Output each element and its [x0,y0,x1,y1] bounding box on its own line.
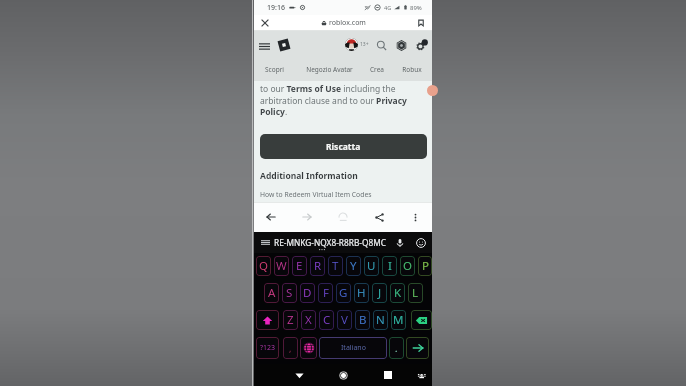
button[interactable]: Q [256,256,271,276]
button[interactable]: D [300,283,315,303]
button[interactable]: Switch keyboard [413,364,429,386]
staticText: 89% [410,4,422,12]
staticText: V [341,312,348,328]
button[interactable]: Share [369,207,389,227]
button[interactable]: H [354,283,369,303]
staticText: C [323,312,331,328]
button[interactable]: Voice input [392,232,408,253]
button[interactable]: Home [335,364,351,386]
button[interactable]: Back [291,364,307,386]
staticText: roblox.com [329,18,366,28]
button[interactable]: Settings [414,38,428,52]
button[interactable]: Italiano [319,337,387,359]
button[interactable]: G [336,283,351,303]
staticText: F [323,285,329,301]
staticText: Robux [402,65,422,74]
button[interactable]: J [372,283,387,303]
staticText: RE-MNKG-NQX8-R8RB-Q8MC [274,237,386,248]
button[interactable]: Negozio Avatar [299,58,359,81]
staticText: W [276,258,287,274]
button[interactable]: Menu [257,31,272,46]
button[interactable]: Recents [380,364,396,386]
button[interactable]: I [382,256,397,276]
button[interactable]: Profile [345,38,358,51]
button[interactable]: Robux [394,38,408,52]
button[interactable]: N [373,310,388,330]
staticText: . [395,342,398,354]
button[interactable]: Z [283,310,298,330]
staticText: L [412,285,419,301]
staticText: M [393,312,404,328]
staticText: How to Redeem Virtual Item Codes [260,190,372,199]
staticText: A [268,285,276,301]
button[interactable]: Chat [427,85,438,96]
button[interactable]: Search [374,38,388,52]
staticText: R [314,258,322,274]
staticText: I [388,258,392,274]
button[interactable]: Scopri [257,58,291,81]
button[interactable]: A [264,283,279,303]
button[interactable]: W [274,256,289,276]
button[interactable]: Crea [364,58,390,81]
staticText: X [305,312,312,328]
staticText: K [394,285,402,301]
button[interactable]: Enter [406,337,429,359]
staticText: 19:16 [267,3,285,13]
button[interactable]: Riscatta [260,134,427,159]
staticText: Q [259,258,268,274]
staticText: to our Terms of Use including the arbitr… [260,83,427,117]
button[interactable]: Shift [256,310,279,330]
button[interactable]: R [310,256,325,276]
button[interactable]: T [328,256,343,276]
button[interactable]: C [319,310,334,330]
button[interactable]: Robux [397,58,427,81]
staticText: Additional Information [260,170,358,182]
staticText: Riscatta [326,141,361,153]
staticText: H [357,285,366,301]
staticText: 4G [384,4,392,11]
button[interactable]: L [408,283,423,303]
button[interactable]: Downloads [333,207,353,227]
staticText: 13+ [360,41,369,48]
staticText: , [289,342,292,354]
button[interactable]: Y [346,256,361,276]
button[interactable]: P [418,256,432,276]
button[interactable]: E [292,256,307,276]
button[interactable]: , [283,337,298,359]
staticText: D [303,285,312,301]
button[interactable]: U [364,256,379,276]
button[interactable]: Bookmark [413,15,429,31]
button[interactable]: Clipboard menu [257,232,273,253]
staticText: G [339,285,348,301]
staticText: P [422,258,429,274]
button[interactable]: Roblox home [277,38,291,52]
button[interactable]: F [318,283,333,303]
staticText: J [378,285,382,301]
button[interactable]: K [390,283,405,303]
button[interactable]: B [355,310,370,330]
staticText: S [286,285,293,301]
button[interactable]: Forward [297,207,317,227]
button[interactable]: More options [405,207,425,227]
staticText: U [367,258,376,274]
button[interactable]: X [301,310,316,330]
button[interactable]: Change language [300,337,317,359]
button[interactable]: V [337,310,352,330]
staticText: Crea [370,65,384,74]
button[interactable]: O [400,256,415,276]
button[interactable]: Emoji [413,232,429,253]
button[interactable]: . [389,337,404,359]
button[interactable]: Back [261,207,281,227]
button[interactable]: ?123 [256,337,279,359]
staticText: Italiano [341,343,366,353]
button[interactable]: Close [257,15,273,31]
staticText: ?123 [260,343,276,353]
staticText: B [359,312,367,328]
button[interactable]: S [282,283,297,303]
staticText: E [296,258,303,274]
button[interactable]: M [391,310,406,330]
staticText: N [376,312,385,328]
staticText: T [332,258,339,274]
staticText: Y [350,258,357,274]
button[interactable]: Backspace [411,310,432,330]
